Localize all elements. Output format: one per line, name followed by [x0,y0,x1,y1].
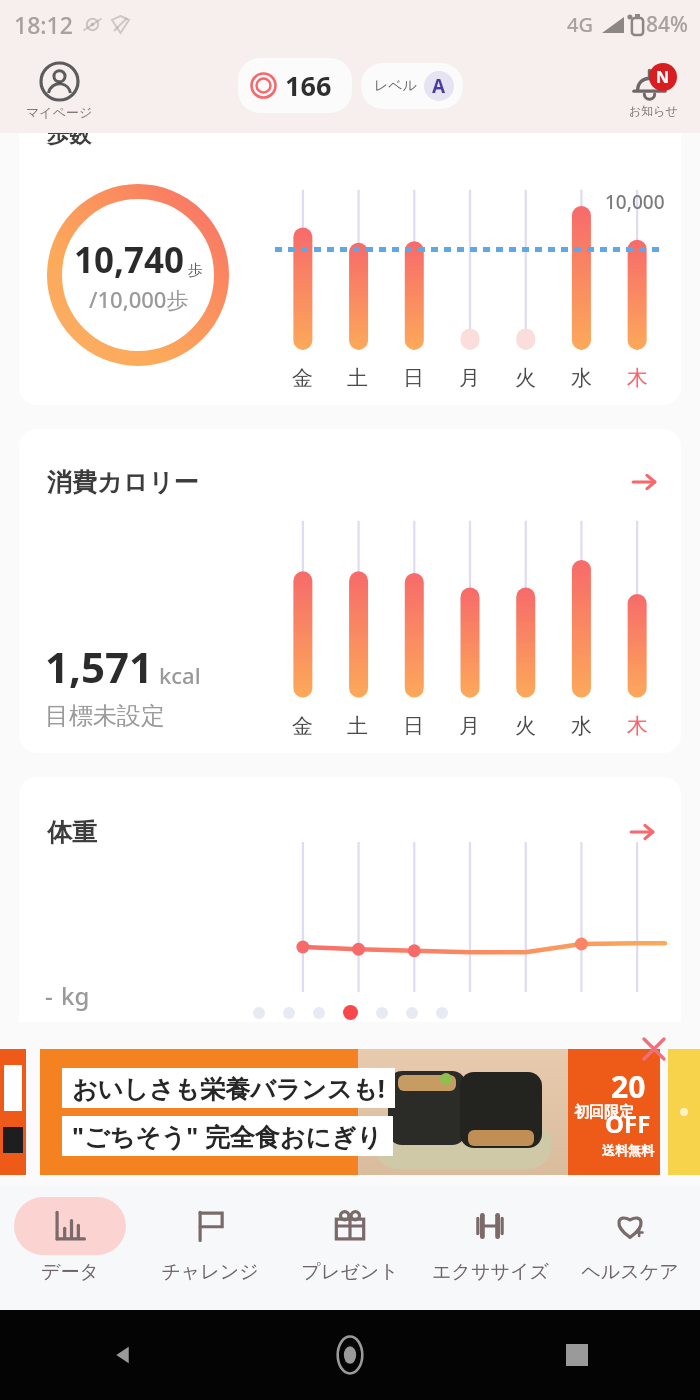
staticText: 木 [627,365,648,391]
staticText: kg [61,979,90,1012]
staticText: "ごちそう" 完全食おにぎり [72,1119,383,1153]
button[interactable]: エクササイズ [420,1185,560,1310]
staticText: kcal [159,660,201,690]
staticText: 金 [292,713,313,739]
button[interactable] [668,1049,700,1175]
staticText: 日 [403,365,424,391]
staticText: 10,000 [605,189,665,215]
staticText: おいしさも栄養バランスも! [72,1071,385,1105]
staticText: 1,571 [45,638,154,695]
staticText: 火 [515,365,536,391]
staticText: 土 [347,713,368,739]
staticText: ヘルスケア [581,1260,679,1284]
staticText: 水 [571,713,592,739]
staticText: - [45,979,53,1012]
staticText: 体重 [47,817,97,848]
staticText: エクササイズ [432,1260,549,1284]
staticText: 水 [571,365,592,391]
button[interactable]: レベル [361,63,463,109]
staticText: 火 [515,713,536,739]
staticText: N [656,66,670,88]
staticText: 歩数 [47,133,91,149]
staticText: 10,740 [74,236,185,284]
button[interactable]: チャレンジ [140,1185,280,1310]
staticText: 4G [567,11,593,38]
button[interactable]: 歩数 [19,133,681,405]
button[interactable]: 消費カロリー [19,429,681,753]
staticText: 日 [403,713,424,739]
button[interactable]: Recents [554,1332,600,1378]
staticText: 18:12 [14,9,73,40]
button[interactable]: Back [100,1332,146,1378]
staticText: 歩 [188,261,203,280]
staticText: チャレンジ [161,1260,259,1284]
button[interactable]: Home [324,1329,376,1381]
staticText: 消費カロリー [47,467,199,498]
staticText: /10,000歩 [89,284,189,314]
staticText: 木 [627,713,648,739]
button[interactable]: 166 [238,58,352,113]
button[interactable]: データ [0,1185,140,1310]
staticText: データ [41,1260,99,1284]
staticText: レベル [374,77,417,95]
staticText: 送料無料 [602,1142,654,1158]
staticText: お知らせ [629,103,678,118]
staticText: 金 [292,365,313,391]
staticText: 166 [285,67,332,104]
button[interactable]: マイページ [20,59,99,122]
staticText: プレゼント [301,1260,399,1284]
staticText: OFF [605,1107,651,1140]
button[interactable]: ヘルスケア [560,1185,700,1310]
button[interactable]: お知らせ [625,61,682,120]
staticText: 目標未設定 [45,701,165,731]
button[interactable]: 体重 [19,777,681,1022]
staticText: 月 [459,365,480,391]
staticText: A [432,73,446,99]
button[interactable]: 初回限定 [40,1049,660,1175]
staticText: 月 [459,713,480,739]
button[interactable]: プレゼント [280,1185,420,1310]
staticText: 84% [646,10,688,39]
staticText: 土 [347,365,368,391]
staticText: 初回限定 [574,1103,634,1122]
button[interactable] [0,1049,26,1175]
button[interactable]: 閉じる [636,1031,672,1067]
staticText: 20 [611,1066,646,1107]
staticText: マイページ [26,104,93,120]
